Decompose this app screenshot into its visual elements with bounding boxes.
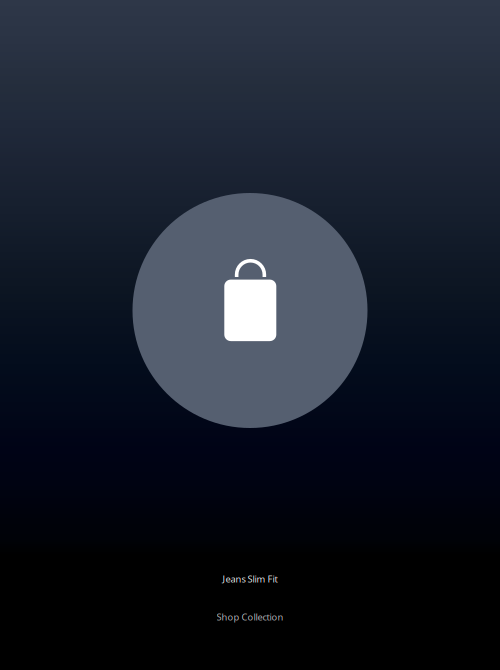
- button[interactable]: Jeans Slim Fit product image: [132, 193, 367, 428]
- staticText: Jeans Slim Fit: [222, 573, 277, 585]
- staticText: Shop Collection: [216, 611, 283, 623]
- button[interactable]: Shop Collection: [206, 606, 293, 628]
